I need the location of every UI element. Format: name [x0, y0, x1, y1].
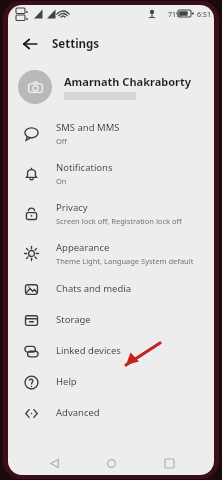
staticText: Linked devices [56, 344, 121, 357]
staticText: Settings [52, 36, 100, 52]
button[interactable]: Privacy [8, 193, 214, 233]
button[interactable]: Help [8, 366, 214, 397]
button[interactable]: Linked devices [8, 335, 214, 366]
staticText: Advanced [56, 406, 100, 419]
button[interactable]: Recents [157, 451, 181, 475]
button[interactable]: Notifications [8, 153, 214, 193]
staticText: Storage [56, 313, 91, 326]
button[interactable]: Back [16, 30, 44, 58]
staticText: 6:51 [197, 10, 211, 20]
button[interactable]: Advanced [8, 397, 214, 428]
staticText: Screen lock off, Registration lock off [56, 216, 182, 226]
button[interactable]: Storage [8, 304, 214, 335]
button[interactable]: SMS and MMS [8, 113, 214, 153]
staticText: 71% [168, 10, 182, 20]
staticText: Chats and media [56, 282, 132, 295]
staticText: Appearance [56, 241, 110, 254]
staticText: Amarnath Chakraborty [64, 74, 192, 89]
staticText: Notifications [56, 161, 113, 174]
button[interactable]: Appearance [8, 233, 214, 273]
button[interactable]: Back [42, 451, 66, 475]
staticText: Theme Light, Language System default [56, 256, 194, 266]
button[interactable]: Amarnath Chakraborty [8, 63, 214, 111]
staticText: Privacy [56, 201, 88, 214]
staticText: SMS and MMS [56, 121, 120, 134]
button[interactable]: Chats and media [8, 273, 214, 304]
staticText: On [56, 176, 67, 186]
staticText: Help [56, 375, 77, 388]
staticText: Off [56, 136, 68, 146]
button[interactable]: Home [99, 451, 123, 475]
